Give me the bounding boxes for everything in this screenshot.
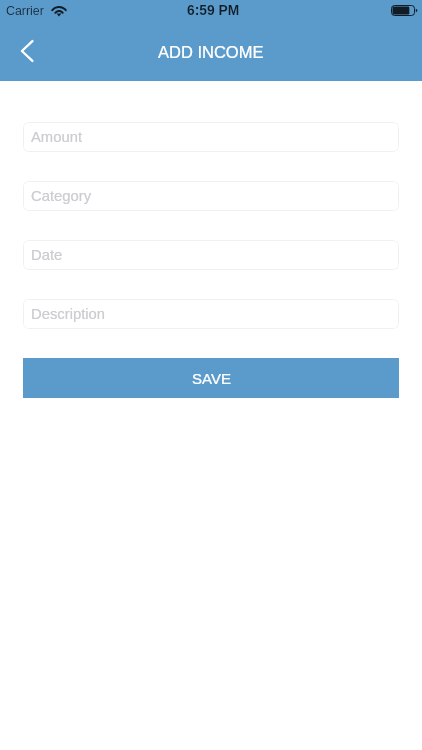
button[interactable]: SAVE bbox=[23, 358, 399, 398]
button[interactable]: Amount bbox=[23, 122, 399, 152]
staticText: Description bbox=[31, 306, 106, 323]
staticText: Carrier bbox=[6, 4, 44, 18]
staticText: Date bbox=[31, 247, 63, 264]
staticText: 6:59 PM bbox=[187, 3, 240, 18]
button[interactable]: Description bbox=[23, 299, 399, 329]
staticText: Category bbox=[31, 188, 92, 205]
staticText: SAVE bbox=[192, 370, 231, 387]
button[interactable]: Category bbox=[23, 181, 399, 211]
button[interactable]: Back bbox=[7, 31, 47, 71]
staticText: ADD INCOME bbox=[158, 43, 264, 61]
button[interactable]: Date bbox=[23, 240, 399, 270]
staticText: Amount bbox=[31, 129, 82, 146]
